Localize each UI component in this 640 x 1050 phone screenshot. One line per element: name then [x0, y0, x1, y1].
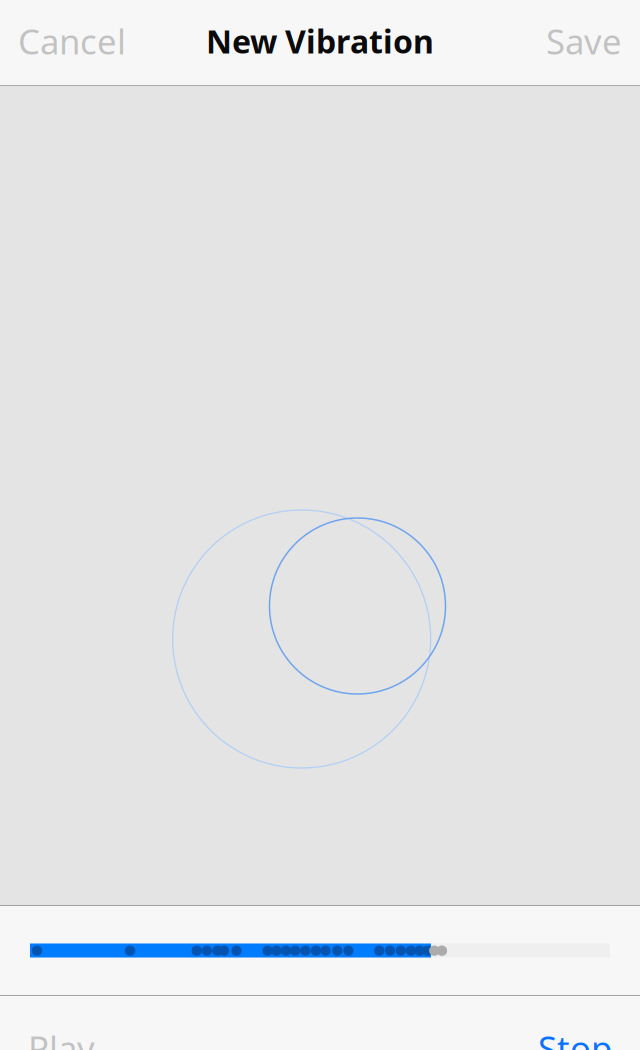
- staticText: New Vibration: [206, 20, 434, 62]
- staticText: Play: [28, 1025, 95, 1050]
- button[interactable]: Tap to record vibration: [0, 86, 640, 905]
- button[interactable]: Save: [528, 0, 640, 85]
- button[interactable]: Cancel: [0, 0, 144, 85]
- staticText: Stop: [538, 1025, 612, 1050]
- staticText: Save: [546, 18, 622, 64]
- button[interactable]: Vibration pattern scrubber: [0, 906, 640, 995]
- staticText: Cancel: [18, 18, 126, 64]
- button[interactable]: Stop: [510, 996, 640, 1050]
- button[interactable]: Play: [0, 996, 123, 1050]
